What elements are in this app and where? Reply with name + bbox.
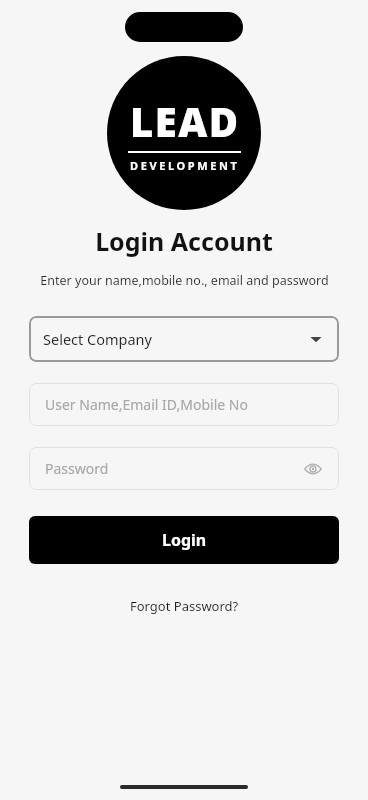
staticText: Select Company <box>43 329 309 349</box>
staticText: Forgot Password? <box>130 597 239 615</box>
button[interactable]: Password <box>29 447 339 490</box>
staticText: DEVELOPMENT <box>130 158 240 173</box>
button[interactable]: Show password <box>301 457 325 481</box>
staticText: Password <box>45 459 301 478</box>
staticText: Enter your name,mobile no., email and pa… <box>40 272 329 289</box>
staticText: LEAD <box>130 94 240 148</box>
staticText: Login <box>162 529 207 551</box>
button[interactable]: Select Company <box>29 316 339 362</box>
staticText: User Name,Email ID,Mobile No <box>45 395 248 414</box>
button[interactable]: Login <box>29 516 339 564</box>
button[interactable]: Forgot Password? <box>120 592 249 620</box>
staticText: Login Account <box>95 224 273 258</box>
button[interactable]: User Name,Email ID,Mobile No <box>29 383 339 426</box>
